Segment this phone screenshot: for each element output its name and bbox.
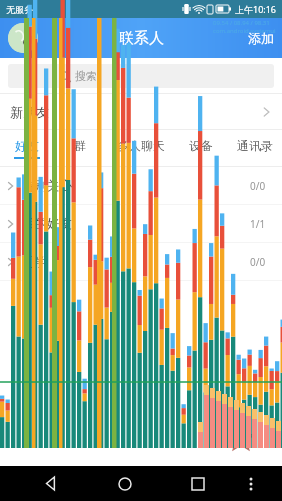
staticText: 1/1 — [250, 217, 266, 231]
button[interactable]: 多人聊天 — [107, 130, 174, 166]
button[interactable]: 通讯录 — [228, 130, 282, 166]
staticText: 0/0 — [250, 179, 266, 193]
staticText: 添加 — [248, 30, 274, 46]
staticText: 多人聊天 — [117, 138, 165, 153]
button[interactable]: 添加 — [240, 24, 282, 52]
staticText: 特别关心 — [22, 178, 72, 194]
button[interactable]: 搜索 — [8, 64, 274, 88]
button[interactable]: 特别关心 — [0, 167, 282, 204]
staticText: com.android.systemui — [213, 27, 276, 35]
staticText: 好友 — [15, 138, 39, 153]
staticText: 设备 — [189, 138, 213, 153]
button[interactable]: Profile — [8, 23, 38, 53]
button[interactable]: 同学 — [0, 243, 282, 280]
button[interactable]: 我的好友 — [0, 205, 282, 242]
staticText: 无服务 — [6, 4, 33, 15]
button[interactable]: More options — [234, 466, 268, 501]
staticText: 09.54 / 08.94 / 98.31 — [213, 19, 270, 27]
staticText: 通讯录 — [237, 138, 273, 153]
staticText: 新朋友 — [10, 104, 49, 120]
staticText: 上午10:16 — [235, 3, 277, 15]
staticText: 搜索 — [75, 69, 97, 83]
staticText: 联系人 — [119, 29, 164, 48]
staticText: 我的好友 — [22, 216, 72, 232]
button[interactable]: 群 — [53, 130, 107, 166]
button[interactable]: Back — [14, 466, 88, 501]
button[interactable]: 好友 — [0, 130, 53, 166]
staticText: 同学 — [22, 254, 47, 270]
button[interactable]: 新朋友 — [0, 94, 282, 129]
staticText: 群 — [74, 138, 86, 153]
button[interactable]: Recent apps — [161, 466, 234, 501]
button[interactable]: 设备 — [174, 130, 228, 166]
staticText: 0/0 — [250, 255, 266, 269]
button[interactable]: Home — [88, 466, 161, 501]
